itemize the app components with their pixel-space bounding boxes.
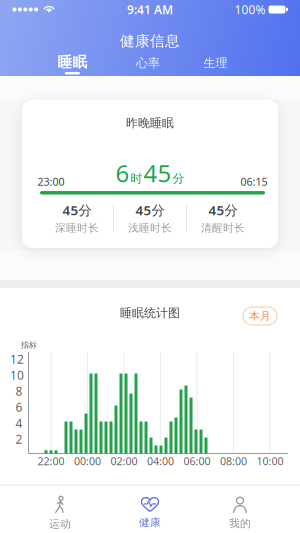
- staticText: 04:00: [147, 454, 174, 468]
- staticText: 昨晚睡眠: [126, 116, 174, 130]
- staticText: 心率: [136, 56, 160, 70]
- staticText: 45: [143, 157, 171, 189]
- staticText: 健康: [139, 516, 161, 529]
- staticText: 健康信息: [120, 32, 180, 50]
- staticText: 10: [10, 367, 24, 383]
- staticText: 睡眠: [57, 53, 87, 71]
- staticText: 45分: [62, 201, 91, 219]
- staticText: 02:00: [110, 454, 137, 468]
- button[interactable]: 心率: [123, 52, 173, 74]
- button[interactable]: 健康: [105, 490, 195, 533]
- button[interactable]: 本月: [243, 307, 277, 325]
- staticText: 10:00: [256, 454, 283, 468]
- staticText: 运动: [49, 517, 71, 530]
- staticText: 生理: [203, 56, 227, 70]
- staticText: 2: [15, 431, 22, 447]
- staticText: 9:41 AM: [127, 1, 173, 17]
- staticText: 45分: [208, 201, 237, 219]
- staticText: 深睡时长: [55, 221, 99, 234]
- staticText: 08:00: [220, 454, 247, 468]
- staticText: 8: [15, 383, 22, 399]
- staticText: 浅睡时长: [128, 221, 172, 234]
- staticText: 清醒时长: [201, 221, 245, 234]
- button[interactable]: 生理: [190, 52, 240, 74]
- staticText: 06:15: [240, 174, 267, 189]
- staticText: 6: [115, 157, 129, 189]
- staticText: 6: [15, 399, 22, 415]
- staticText: 22:00: [37, 454, 64, 468]
- staticText: 时: [130, 171, 142, 186]
- staticText: 23:00: [37, 174, 64, 189]
- staticText: 06:00: [183, 454, 210, 468]
- staticText: 00:00: [74, 454, 101, 468]
- staticText: 睡眠统计图: [120, 306, 180, 320]
- staticText: 45分: [135, 201, 164, 219]
- staticText: 12: [10, 351, 24, 367]
- staticText: 4: [15, 415, 22, 431]
- staticText: 分: [172, 171, 184, 186]
- button[interactable]: 运动: [15, 490, 105, 533]
- button[interactable]: 睡眠: [47, 51, 97, 73]
- staticText: 指标: [21, 340, 37, 350]
- button[interactable]: 我的: [195, 490, 285, 533]
- staticText: 100%: [234, 1, 265, 17]
- staticText: 我的: [229, 517, 251, 530]
- staticText: 本月: [249, 309, 271, 322]
